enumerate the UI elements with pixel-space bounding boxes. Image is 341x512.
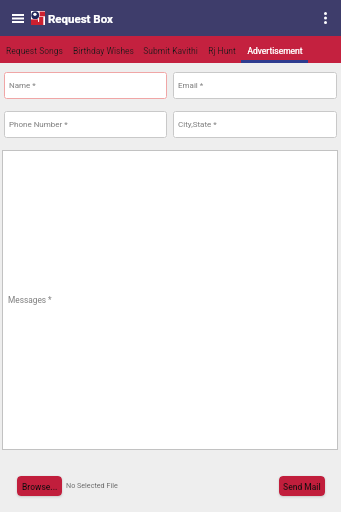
button[interactable]: City,State * — [173, 111, 337, 138]
button[interactable]: Request Songs — [0, 36, 68, 63]
button[interactable]: Submit Kavithi — [136, 36, 204, 63]
button[interactable]: Name * — [4, 72, 167, 99]
button[interactable]: Browse... — [17, 476, 62, 496]
staticText: Phone Number * — [9, 120, 68, 129]
button[interactable]: Email * — [173, 72, 337, 99]
staticText: Request Box — [48, 12, 113, 25]
button[interactable]: Rj Hunt — [200, 36, 244, 63]
button[interactable]: Birthday Wishes — [67, 36, 139, 63]
staticText: Advertisement — [247, 46, 303, 56]
button[interactable]: Send Mail — [279, 476, 325, 496]
staticText: Rj Hunt — [208, 46, 236, 56]
staticText: Email * — [178, 81, 204, 90]
staticText: Messages * — [8, 295, 52, 305]
staticText: Send Mail — [283, 482, 321, 492]
staticText: No Selected File — [66, 481, 118, 489]
staticText: Request Songs — [6, 46, 63, 56]
button[interactable]: Phone Number * — [4, 111, 167, 138]
button[interactable]: Messages * — [2, 150, 338, 450]
staticText: Browse... — [22, 482, 58, 492]
staticText: Submit Kavithi — [143, 46, 198, 56]
staticText: Name * — [9, 81, 36, 90]
button[interactable]: Menu — [3, 0, 33, 36]
button[interactable]: More options — [311, 0, 339, 36]
staticText: Birthday Wishes — [73, 46, 134, 56]
staticText: City,State * — [178, 120, 217, 129]
button[interactable]: Advertisement — [241, 36, 308, 63]
